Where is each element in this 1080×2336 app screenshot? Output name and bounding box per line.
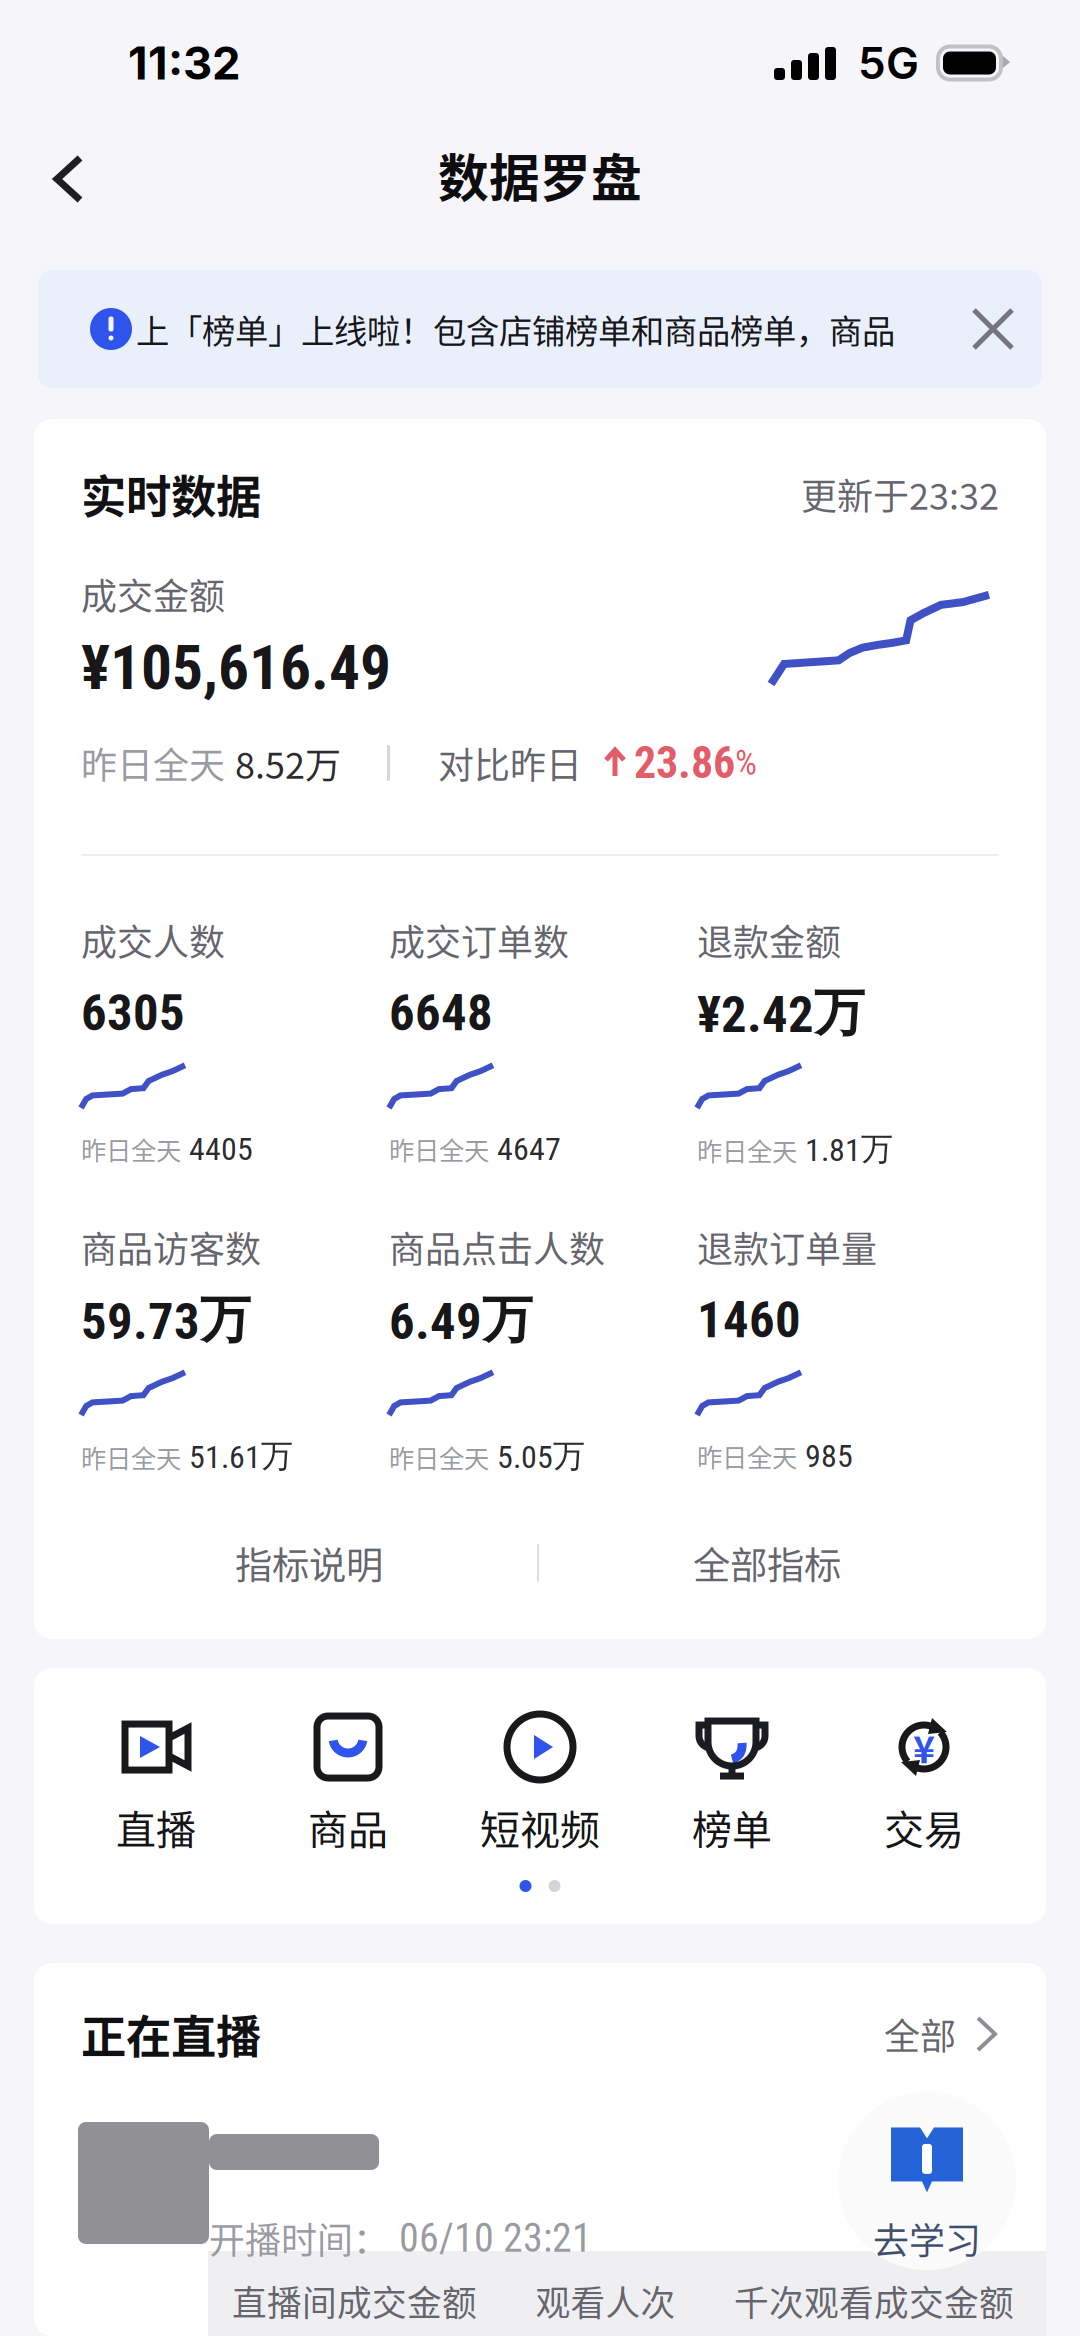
staticText: 8.52万 — [235, 737, 341, 789]
staticText: 59.73万 — [81, 1288, 251, 1352]
staticText: 短视频 — [480, 1798, 600, 1856]
staticText: 4405 — [189, 1130, 253, 1168]
staticText: 对比昨日 — [438, 737, 582, 789]
button[interactable]: ¥ — [828, 1712, 1020, 1848]
staticText: 直播间成交金额 — [232, 2276, 477, 2326]
button[interactable]: 去学习 — [838, 2092, 1016, 2270]
button[interactable]: 指标说明 — [81, 1533, 537, 1593]
staticText: 昨日全天 — [81, 1439, 181, 1475]
staticText: 千次观看成交金额 — [734, 2276, 1014, 2326]
staticText: 上「榜单」上线啦！包含店铺榜单和商品榜单，商品 — [136, 305, 895, 353]
staticText: 正在直播 — [81, 2001, 261, 2067]
staticText: 昨日全天 — [389, 1439, 489, 1475]
staticText: 成交金额 — [81, 568, 225, 620]
staticText: 观看人次 — [535, 2276, 675, 2326]
button[interactable]: 榜单 — [636, 1712, 828, 1848]
staticText: 成交人数 — [81, 914, 225, 966]
staticText: 成交订单数 — [389, 914, 569, 966]
staticText: 指标说明 — [235, 1536, 383, 1590]
staticText: 6.49万 — [389, 1288, 533, 1352]
button[interactable]: 全部 — [884, 2008, 999, 2060]
staticText: 退款订单量 — [697, 1221, 877, 1273]
staticText: 昨日全天 — [389, 1131, 489, 1167]
staticText: 全部 — [884, 2008, 956, 2060]
staticText: 实时数据 — [81, 461, 261, 527]
staticText: ¥ — [913, 1720, 935, 1774]
staticText: 商品访客数 — [81, 1221, 261, 1273]
staticText: 51.61万 — [189, 1436, 293, 1476]
staticText: % — [735, 743, 757, 783]
staticText: 开播时间： — [209, 2212, 389, 2264]
staticText: 5G — [858, 36, 919, 90]
staticText: 去学习 — [873, 2212, 981, 2264]
staticText: 11:32 — [128, 36, 241, 90]
staticText: 06/10 23:21 — [399, 2215, 592, 2261]
staticText: 昨日全天 — [81, 1131, 181, 1167]
staticText: 数据罗盘 — [438, 138, 642, 212]
staticText: 商品点击人数 — [389, 1221, 605, 1273]
button[interactable]: 短视频 — [444, 1712, 636, 1848]
button[interactable]: 直播 — [60, 1712, 252, 1848]
staticText: 昨日全天 — [697, 1132, 797, 1168]
staticText: 直播 — [116, 1798, 196, 1856]
staticText: 1460 — [697, 1290, 801, 1350]
button[interactable]: 商品 — [252, 1712, 444, 1848]
staticText: 更新于23:32 — [801, 468, 999, 520]
staticText: 4647 — [497, 1130, 561, 1168]
staticText: 6305 — [81, 983, 185, 1043]
button[interactable]: Close — [944, 288, 1042, 370]
button[interactable]: Back — [0, 133, 121, 225]
button[interactable]: 全部指标 — [539, 1533, 995, 1593]
staticText: 1.81万 — [805, 1129, 893, 1169]
staticText: 商品 — [308, 1798, 388, 1856]
staticText: 昨日全天 — [81, 737, 225, 789]
staticText: 交易 — [884, 1798, 964, 1856]
staticText: ¥105,616.49 — [81, 632, 391, 704]
staticText: 23.86 — [634, 737, 735, 789]
staticText: ¥2.42万 — [697, 981, 865, 1045]
staticText: 5.05万 — [497, 1436, 585, 1476]
staticText: 昨日全天 — [697, 1438, 797, 1474]
staticText: 榜单 — [692, 1798, 772, 1856]
staticText: 全部指标 — [693, 1536, 841, 1590]
staticText: 退款金额 — [697, 914, 841, 966]
staticText: 985 — [805, 1437, 853, 1475]
staticText: 6648 — [389, 983, 493, 1043]
